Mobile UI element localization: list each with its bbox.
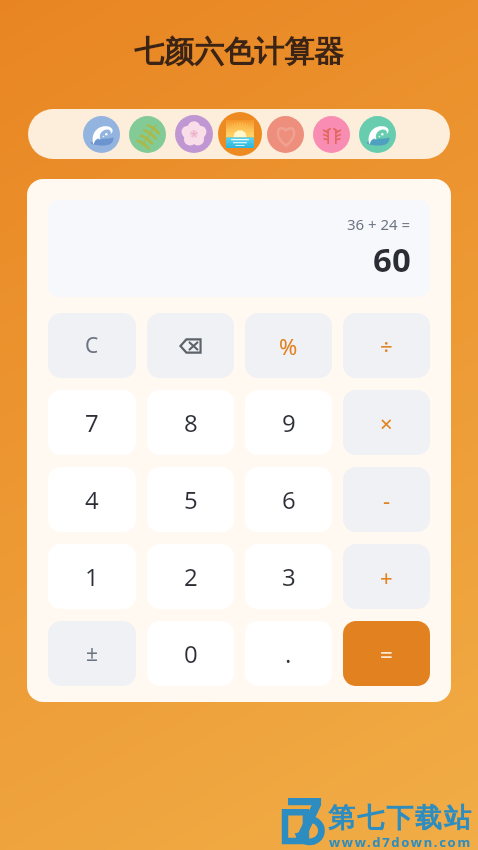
button[interactable]: Theme	[83, 116, 120, 153]
staticText: 七颜六色计算器	[134, 33, 344, 71]
button[interactable]: +	[343, 544, 430, 609]
button[interactable]: .	[245, 621, 332, 686]
button[interactable]: 2	[147, 544, 234, 609]
staticText: 6	[282, 483, 296, 516]
staticText: 2	[184, 560, 198, 593]
button[interactable]: Theme	[218, 112, 262, 156]
button[interactable]: ±	[48, 621, 136, 686]
button[interactable]: 7	[48, 390, 136, 455]
staticText: =	[380, 639, 393, 669]
button[interactable]: 9	[245, 390, 332, 455]
staticText: -	[383, 485, 391, 515]
button[interactable]: Theme	[359, 116, 396, 153]
staticText: .	[285, 637, 292, 670]
staticText: 9	[282, 406, 296, 439]
button[interactable]: Theme	[313, 116, 350, 153]
staticText: 5	[184, 483, 198, 516]
staticText: 7	[85, 406, 99, 439]
staticText: 1	[85, 560, 99, 593]
staticText: 8	[184, 406, 198, 439]
staticText: 4	[85, 483, 99, 516]
button[interactable]: =	[343, 621, 430, 686]
button[interactable]: Theme	[129, 116, 166, 153]
staticText: www.d7down.com	[329, 833, 472, 850]
button[interactable]: 0	[147, 621, 234, 686]
staticText: %	[279, 331, 298, 361]
button[interactable]: Theme	[267, 116, 304, 153]
staticText: 36 + 24 =	[347, 214, 411, 234]
button[interactable]: -	[343, 467, 430, 532]
button[interactable]: 3	[245, 544, 332, 609]
button[interactable]: 4	[48, 467, 136, 532]
staticText: 第七下载站	[327, 801, 472, 835]
staticText: 0	[184, 637, 198, 670]
button[interactable]: ×	[343, 390, 430, 455]
staticText: C	[85, 331, 99, 360]
staticText: ×	[380, 408, 393, 438]
button[interactable]: Backspace	[147, 313, 234, 378]
staticText: +	[380, 562, 393, 592]
staticText: ±	[86, 639, 99, 668]
button[interactable]: C	[48, 313, 136, 378]
staticText: ÷	[380, 331, 393, 361]
button[interactable]: Theme	[175, 115, 213, 153]
staticText: 3	[282, 560, 296, 593]
button[interactable]: 1	[48, 544, 136, 609]
button[interactable]: 8	[147, 390, 234, 455]
button[interactable]: ÷	[343, 313, 430, 378]
button[interactable]: 5	[147, 467, 234, 532]
button[interactable]: 6	[245, 467, 332, 532]
button[interactable]: %	[245, 313, 332, 378]
staticText: 60	[373, 237, 411, 282]
